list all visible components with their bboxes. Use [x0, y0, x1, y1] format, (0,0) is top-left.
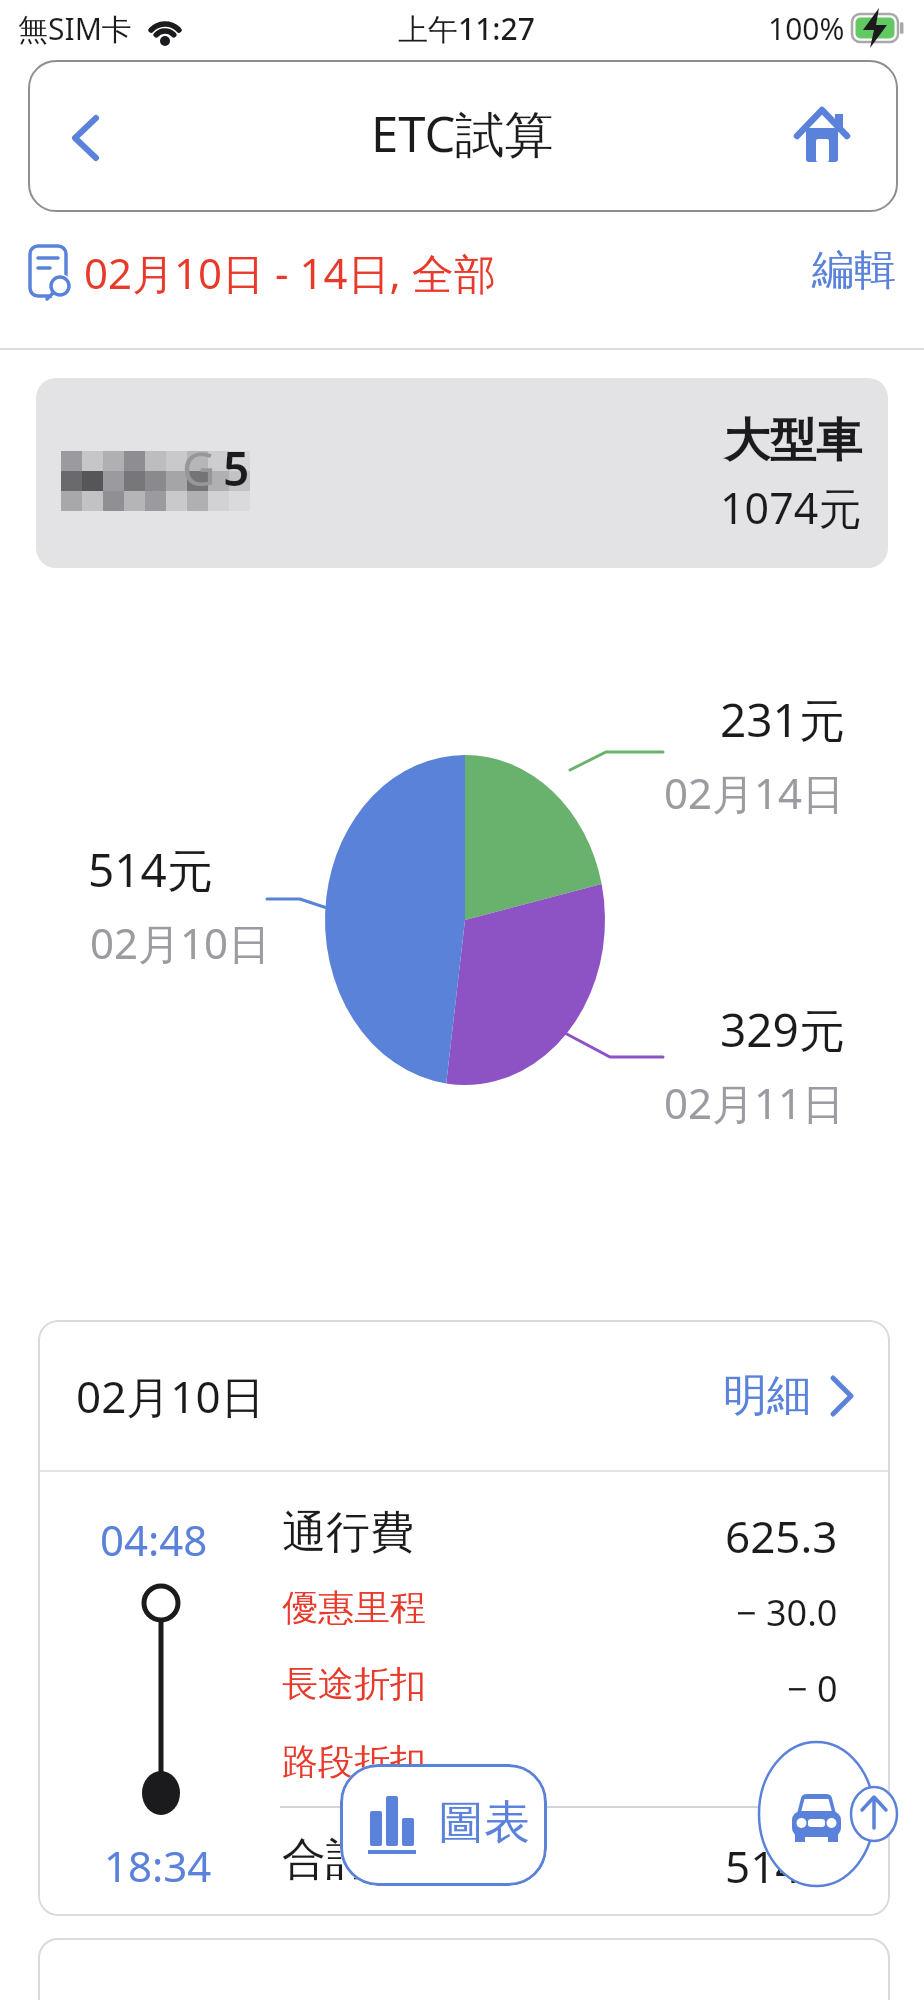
staticText: 231元	[720, 688, 845, 751]
staticText: 514.3	[725, 1836, 838, 1896]
staticText: 優惠里程	[282, 1585, 426, 1630]
staticText: 5	[223, 437, 250, 500]
button[interactable]	[756, 1740, 906, 1890]
staticText: 02月10日	[90, 914, 271, 971]
staticText: 無SIM卡	[18, 8, 132, 49]
staticText: ETC試算	[371, 100, 554, 167]
staticText: 合計	[282, 1832, 370, 1887]
staticText: 514元	[88, 838, 213, 901]
button[interactable]	[56, 100, 116, 172]
staticText: 圖表	[438, 1794, 530, 1852]
button[interactable]: 明細	[723, 1368, 890, 1428]
staticText: − 0	[787, 1746, 838, 1795]
staticText: 長途折扣	[282, 1661, 426, 1706]
staticText: 02月14日	[664, 764, 845, 821]
staticText: 1074元	[720, 478, 862, 537]
staticText: 02月11日	[664, 1074, 845, 1131]
staticText: 18:34	[104, 1837, 212, 1894]
button[interactable]	[793, 102, 857, 170]
staticText: 625.3	[725, 1506, 838, 1566]
staticText: 編輯	[812, 244, 896, 297]
staticText: 02月10日 - 14日, 全部	[84, 244, 496, 301]
button[interactable]: 編輯	[776, 244, 896, 304]
staticText: 100%	[768, 8, 845, 49]
button[interactable]: G	[36, 378, 888, 568]
staticText: − 30.0	[736, 1588, 838, 1637]
staticText: − 0	[787, 1664, 838, 1713]
staticText: 通行費	[282, 1505, 414, 1560]
staticText: G	[182, 437, 216, 500]
button[interactable]: 02月10日 - 14日, 全部	[84, 244, 496, 304]
staticText: 路段折扣	[282, 1739, 426, 1784]
staticText: 上午11:27	[398, 8, 535, 49]
staticText: 329元	[720, 998, 845, 1061]
staticText: 大型車	[724, 412, 862, 470]
button[interactable]: 圖表	[340, 1764, 547, 1886]
staticText: 02月10日	[76, 1366, 265, 1426]
staticText: 04:48	[100, 1511, 208, 1568]
staticText: 明細	[723, 1368, 811, 1423]
